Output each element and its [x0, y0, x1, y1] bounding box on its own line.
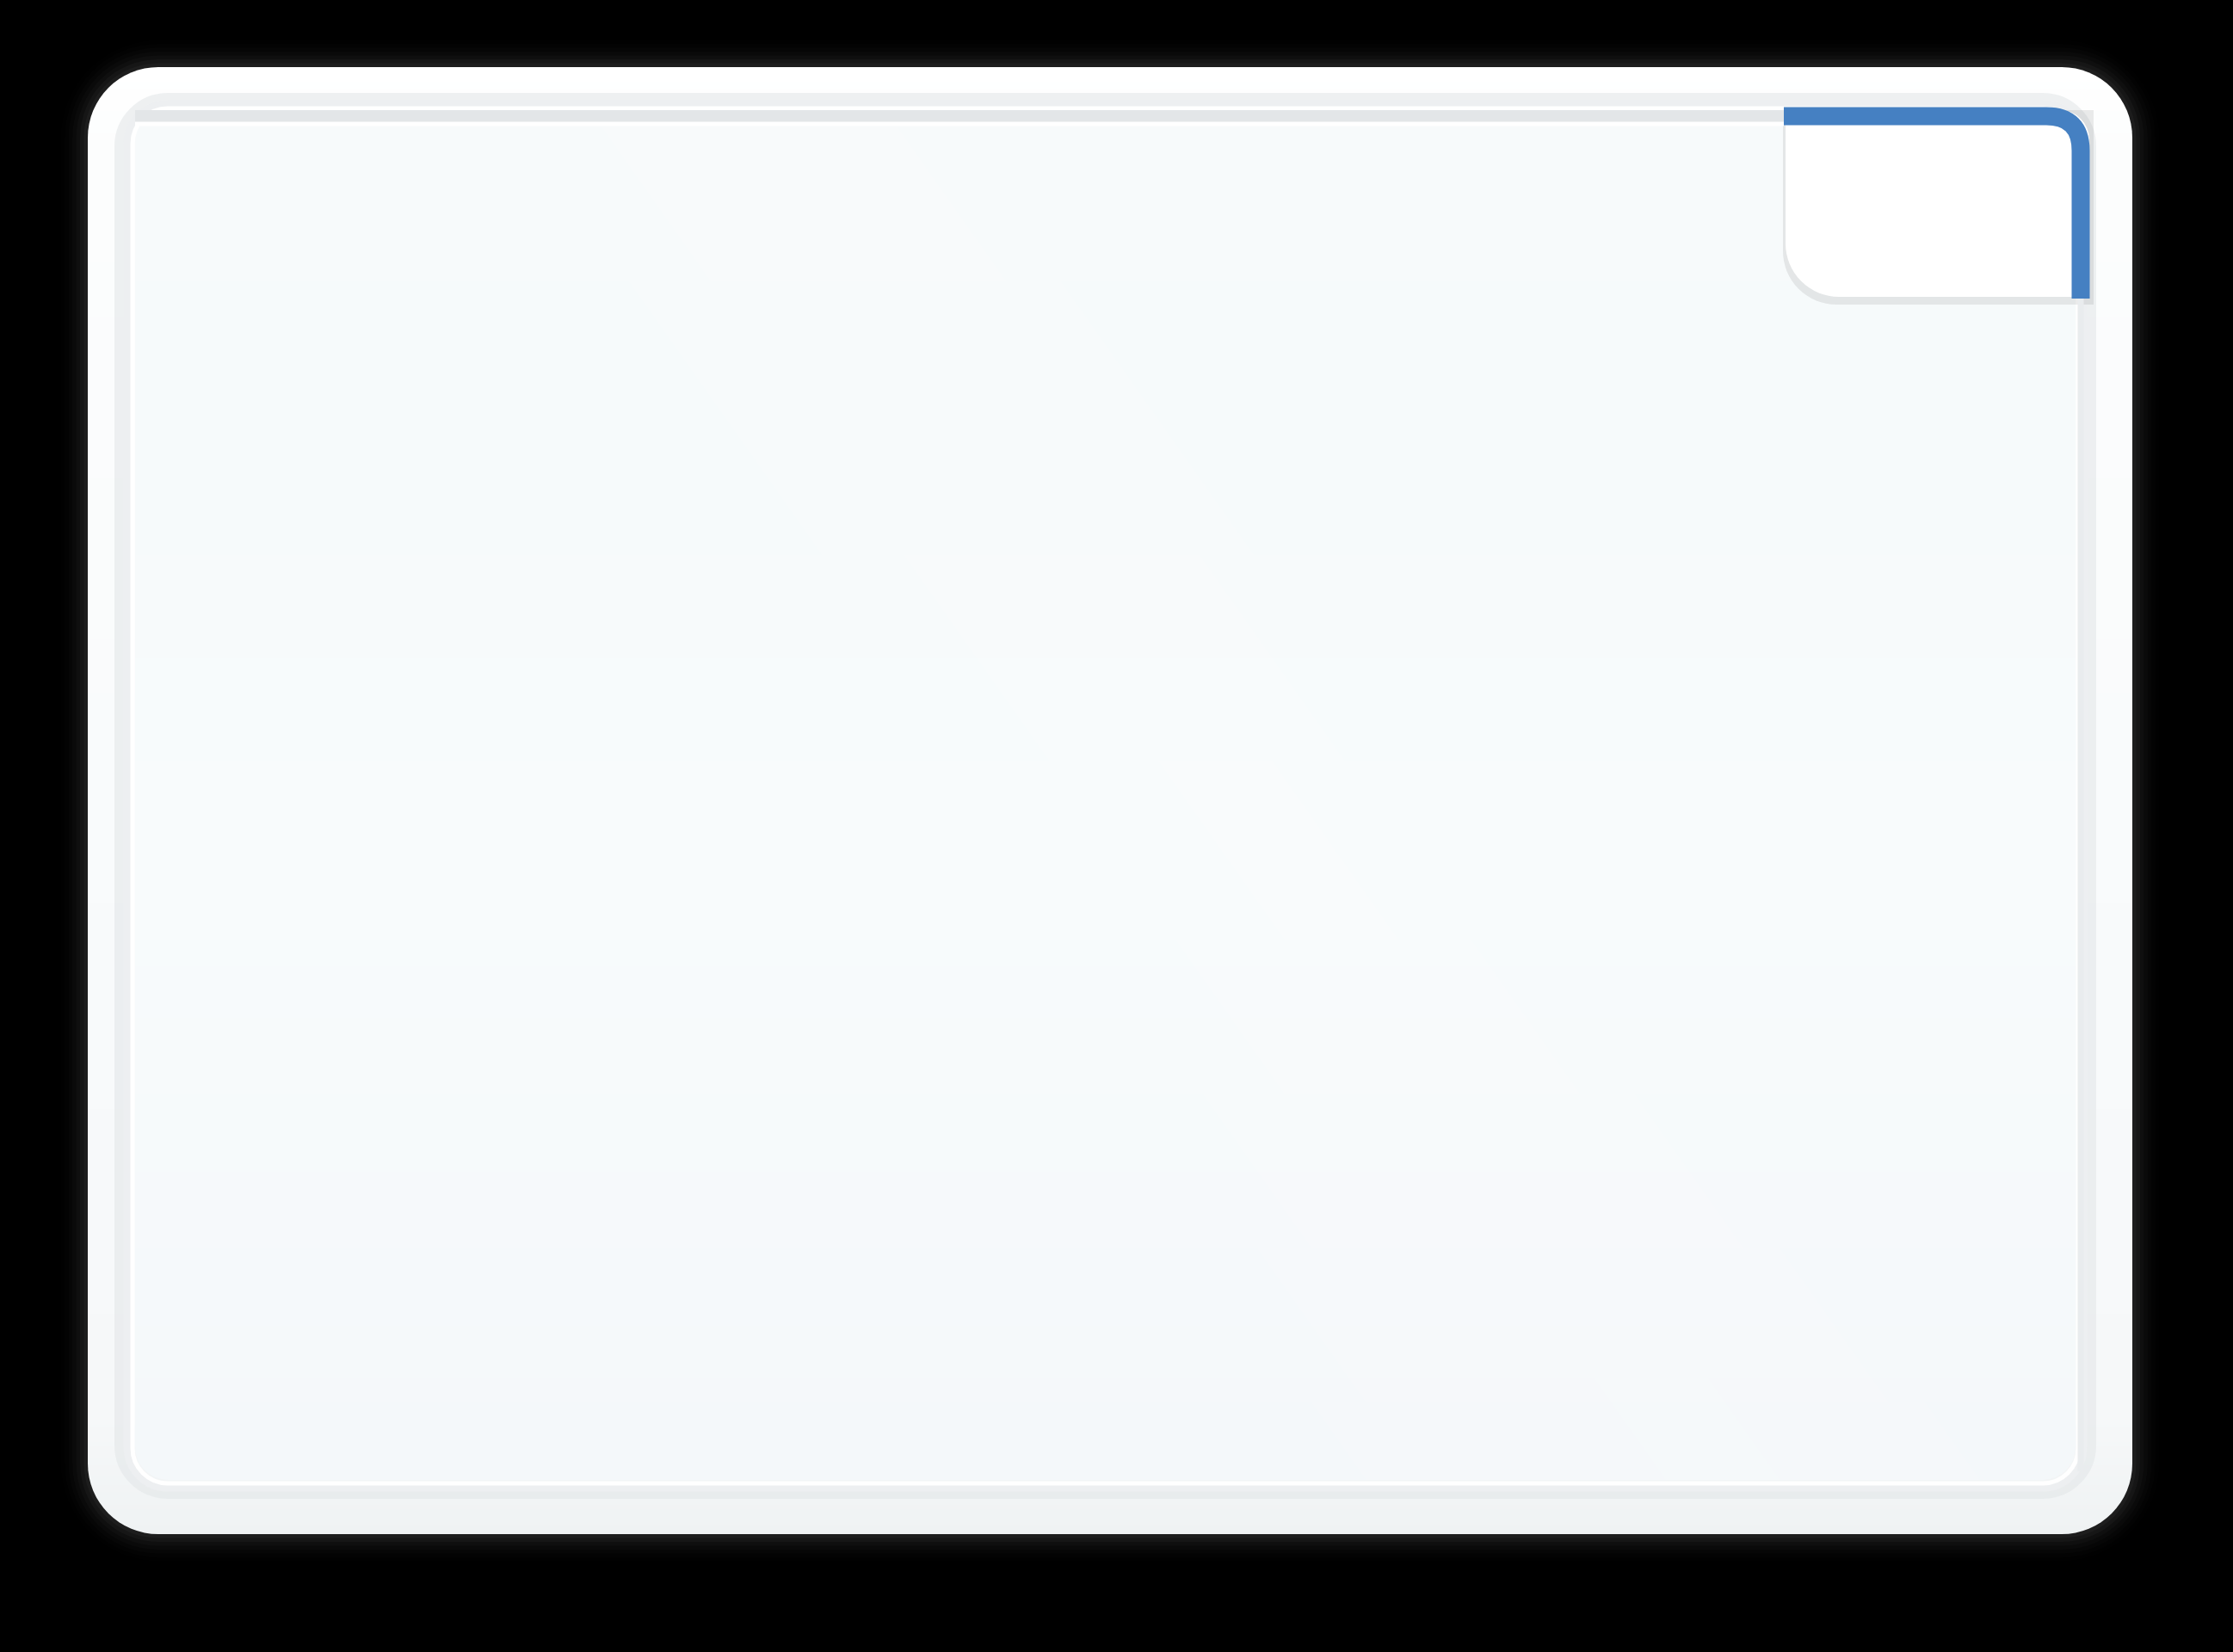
button[interactable]: Tablet device preview	[0, 0, 2233, 1652]
